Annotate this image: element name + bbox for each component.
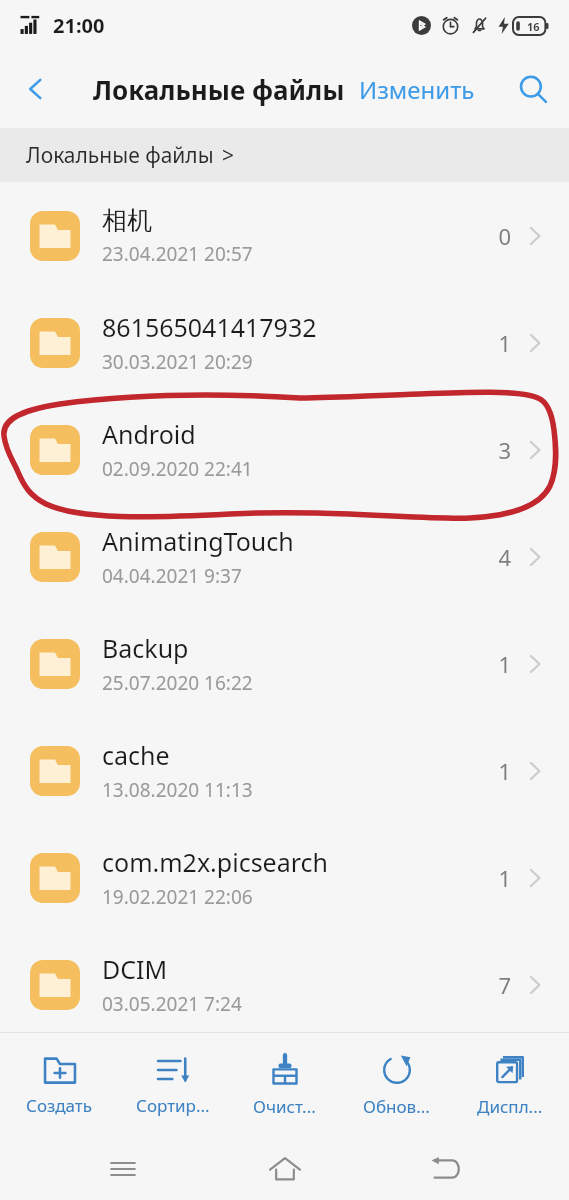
- staticText: 16: [527, 19, 540, 34]
- staticText: 30.03.2021 20:29: [102, 349, 253, 375]
- staticText: 25.07.2020 16:22: [102, 670, 253, 696]
- button[interactable]: Создать: [7, 1033, 112, 1138]
- button[interactable]: 861565041417932: [0, 289, 569, 396]
- staticText: Диспл...: [477, 1095, 543, 1118]
- button[interactable]: com.m2x.picsearch: [0, 824, 569, 931]
- staticText: 13.08.2020 11:13: [102, 777, 253, 803]
- button[interactable]: AnimatingTouch: [0, 503, 569, 610]
- staticText: Backup: [102, 631, 189, 665]
- button[interactable]: Home: [247, 1138, 323, 1200]
- button[interactable]: Android: [0, 396, 569, 503]
- staticText: 03.05.2021 7:24: [102, 991, 242, 1017]
- button[interactable]: Очист...: [232, 1033, 337, 1138]
- staticText: cache: [102, 738, 170, 772]
- staticText: 04.04.2021 9:37: [102, 563, 242, 589]
- staticText: AnimatingTouch: [102, 524, 294, 558]
- staticText: 861565041417932: [102, 310, 317, 344]
- button[interactable]: Изменить: [357, 67, 477, 112]
- staticText: 1: [485, 649, 511, 679]
- staticText: com.m2x.picsearch: [102, 845, 329, 879]
- button[interactable]: Backup: [0, 610, 569, 717]
- button[interactable]: Recent apps: [85, 1138, 161, 1200]
- staticText: 4: [485, 542, 511, 572]
- button[interactable]: Back: [8, 61, 64, 117]
- staticText: >: [222, 141, 235, 170]
- staticText: 1: [485, 756, 511, 786]
- staticText: 1: [485, 863, 511, 893]
- button[interactable]: DCIM: [0, 931, 569, 1038]
- staticText: Изменить: [359, 73, 475, 106]
- staticText: 7: [485, 970, 511, 1000]
- staticText: DCIM: [102, 952, 168, 986]
- staticText: 19.02.2021 22:06: [102, 884, 253, 910]
- staticText: Локальные файлы: [93, 72, 345, 107]
- staticText: Android: [102, 417, 196, 451]
- staticText: 23.04.2021 20:57: [102, 241, 253, 267]
- button[interactable]: cache: [0, 717, 569, 824]
- button[interactable]: Back: [408, 1138, 484, 1200]
- staticText: Обнов...: [363, 1095, 430, 1118]
- button[interactable]: Обнов...: [344, 1033, 449, 1138]
- button[interactable]: Сортир...: [120, 1033, 225, 1138]
- staticText: 1: [485, 328, 511, 358]
- button[interactable]: 相机: [0, 182, 569, 289]
- button[interactable]: Локальные файлы: [26, 141, 235, 170]
- button[interactable]: Диспл...: [457, 1033, 562, 1138]
- staticText: 0: [485, 221, 511, 251]
- staticText: Очист...: [253, 1095, 316, 1118]
- staticText: Локальные файлы: [26, 141, 214, 170]
- button[interactable]: Search: [505, 61, 561, 117]
- staticText: Сортир...: [136, 1094, 210, 1117]
- staticText: 21:00: [53, 12, 105, 39]
- staticText: 3: [485, 435, 511, 465]
- staticText: 02.09.2020 22:41: [102, 456, 253, 482]
- staticText: Создать: [26, 1094, 93, 1117]
- staticText: 相机: [102, 205, 152, 236]
